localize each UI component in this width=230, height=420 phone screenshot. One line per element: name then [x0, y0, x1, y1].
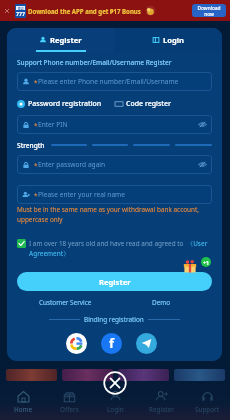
button[interactable]: Password registration — [17, 99, 102, 109]
staticText: Customer Service — [39, 298, 92, 307]
staticText: Must be in the same name as your withdra… — [17, 205, 212, 224]
staticText: Demo — [152, 298, 171, 307]
staticText: Binding registration — [84, 315, 144, 324]
staticText: Download now — [192, 5, 226, 17]
staticText: +1 — [203, 259, 209, 266]
staticText: Home — [14, 405, 33, 414]
button[interactable]: Sign in with Facebook — [101, 333, 122, 354]
staticText: Please enter Phone number/Email/Username — [38, 77, 179, 86]
button[interactable]: Customer Service — [39, 298, 92, 307]
staticText: JILI — [18, 6, 24, 10]
button[interactable]: Offers — [46, 384, 92, 420]
button[interactable]: Close banner — [3, 7, 11, 15]
button[interactable]: Support — [184, 384, 230, 420]
button[interactable]: Toggle password — [198, 120, 207, 129]
button[interactable]: Home — [0, 384, 46, 420]
button[interactable]: * — [17, 115, 212, 134]
button[interactable]: Sign in with Telegram — [136, 333, 157, 354]
button[interactable]: * — [17, 72, 212, 91]
button[interactable]: Sign in with Google — [66, 333, 87, 354]
staticText: Download the APP and get ₱17 Bonus — [28, 7, 141, 15]
button[interactable]: Code register — [115, 99, 172, 109]
staticText: Enter password again — [38, 160, 106, 169]
staticText: Login — [163, 35, 184, 45]
button[interactable]: Demo — [152, 298, 171, 307]
staticText: Register — [99, 277, 131, 287]
staticText: Please enter your real name — [38, 190, 125, 199]
staticText: * — [34, 121, 38, 129]
button[interactable]: Register — [7, 28, 114, 52]
staticText: Code register — [126, 99, 172, 109]
staticText: Register — [149, 405, 174, 414]
button[interactable]: Register — [17, 272, 212, 291]
button[interactable]: Login — [114, 28, 222, 52]
staticText: * — [34, 78, 38, 86]
button[interactable]: Login — [92, 384, 138, 420]
staticText: * — [34, 161, 38, 169]
button[interactable]: Toggle password — [198, 160, 207, 169]
staticText: f — [109, 334, 115, 352]
staticText: Enter PIN — [38, 120, 68, 129]
staticText: Support Phone number/Email/Username Regi… — [17, 58, 172, 67]
staticText: Login — [107, 405, 124, 414]
button[interactable]: * — [17, 185, 212, 204]
button[interactable]: Close — [103, 371, 127, 395]
staticText: Offers — [60, 405, 79, 414]
staticText: * — [34, 191, 38, 199]
button[interactable]: * — [17, 155, 212, 174]
staticText: I am over 18 years old and have read and… — [29, 239, 212, 258]
button[interactable]: Download now — [192, 4, 226, 17]
staticText: Password registration — [28, 99, 102, 109]
staticText: 777 — [16, 10, 25, 17]
button[interactable]: I am over 18 years old and have read and… — [17, 239, 212, 258]
staticText: Strength — [17, 141, 45, 150]
button[interactable]: Register — [138, 384, 184, 420]
staticText: Register — [50, 35, 82, 45]
staticText: Support — [195, 405, 220, 414]
